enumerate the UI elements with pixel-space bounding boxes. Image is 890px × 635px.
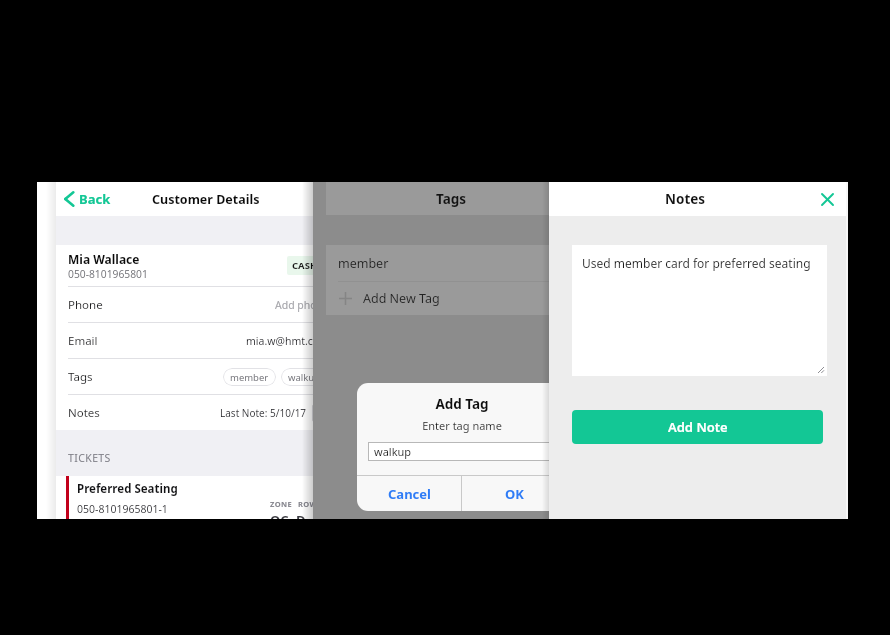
staticText: Add Note [668,418,728,436]
button[interactable]: Add Note [572,410,823,444]
button[interactable]: Add New Tag [326,282,549,315]
staticText: Add phone [275,298,313,312]
button[interactable]: Back [64,182,111,216]
staticText: Phone [68,297,103,313]
staticText: TICKETS [68,451,111,465]
staticText: member [338,255,389,272]
staticText: Used member card for preferred seating [582,255,811,271]
button[interactable]: member [230,368,269,386]
staticText: Enter tag name [357,418,549,433]
staticText: ZONE [270,499,293,509]
button[interactable]: Preferred Seating [56,476,313,519]
button[interactable]: Notes [68,395,313,430]
staticText: walkup [288,371,313,384]
button[interactable]: Used member card for preferred seating [572,245,827,376]
staticText: OK [505,485,524,503]
staticText: Tags [68,369,93,385]
button[interactable]: Close notes [816,188,838,210]
staticText: 050-8101965801 [68,267,148,281]
staticText: Add Tag [357,395,549,413]
staticText: Back [79,190,111,208]
staticText: 050-8101965801-1 [77,502,168,516]
button[interactable]: walkup [368,442,549,461]
button[interactable]: Mia Wallace [68,245,313,286]
button[interactable]: Cancel [357,476,461,511]
staticText: Notes [665,190,706,208]
staticText: OC [270,511,289,519]
staticText: mia.w@hmt.com [246,334,313,348]
button[interactable]: Phone [68,287,313,322]
button[interactable]: OK [462,476,549,511]
staticText: Cancel [388,485,431,503]
staticText: walkup [374,444,412,459]
staticText: CASH [292,259,313,272]
staticText: Add New Tag [363,290,440,307]
button[interactable]: Tags [68,359,313,394]
staticText: Tags [436,190,467,208]
button[interactable]: walkup [288,368,313,386]
button[interactable]: member [326,245,549,281]
staticText: Notes [68,405,100,421]
staticText: Preferred Seating [77,481,178,497]
staticText: Customer Details [152,191,260,208]
button[interactable]: Email [68,323,313,358]
staticText: D [296,511,306,519]
staticText: Email [68,333,98,349]
staticText: Last Note: 5/10/17 [220,406,307,420]
staticText: member [230,371,269,384]
staticText: ROW [298,499,313,509]
staticText: Mia Wallace [68,251,140,267]
